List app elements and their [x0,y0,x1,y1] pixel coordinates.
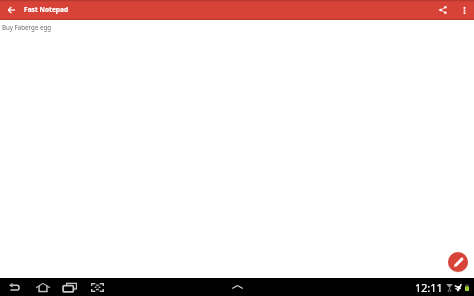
button[interactable]: Back [4,0,18,20]
button[interactable]: Back [5,278,25,296]
staticText: Buy Faberge egg [2,23,52,31]
staticText: 12:11 [415,280,443,295]
button[interactable]: Screenshot [87,278,107,296]
button[interactable]: New note [448,252,468,272]
button[interactable]: Share [435,0,451,20]
button[interactable]: Home [33,278,53,296]
button[interactable]: Expand notifications [225,278,249,296]
staticText: Fast Notepad [24,5,69,14]
button[interactable]: Recents [60,278,80,296]
button[interactable]: More options [456,0,472,20]
